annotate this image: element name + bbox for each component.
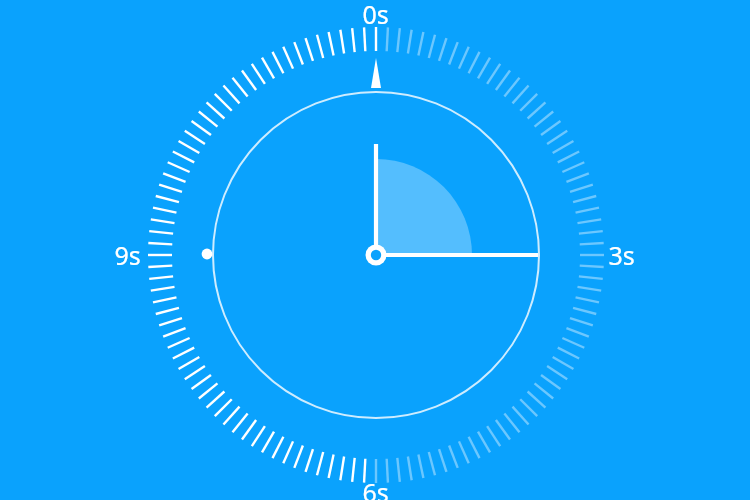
button[interactable]: Stopwatch dial — [0, 0, 750, 500]
